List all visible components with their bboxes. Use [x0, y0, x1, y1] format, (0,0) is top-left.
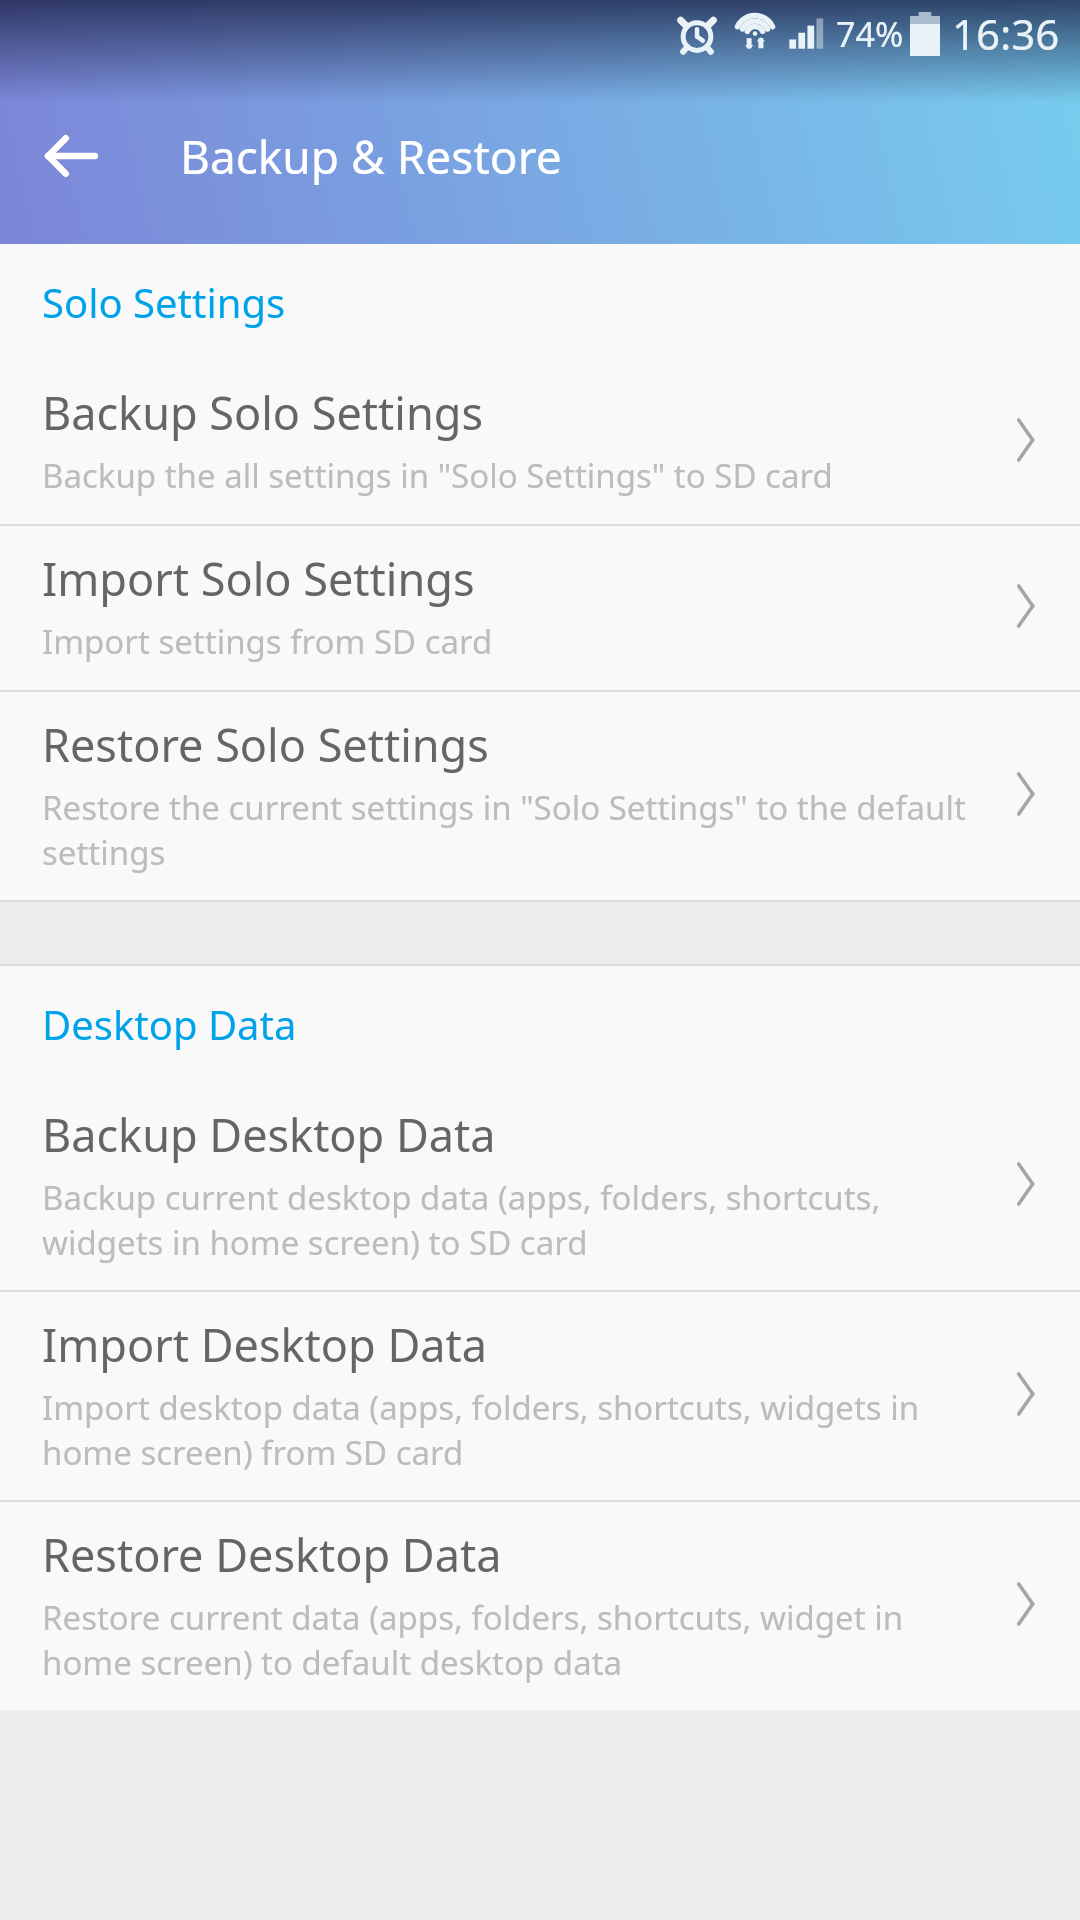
staticText: Backup Desktop Data	[42, 1104, 496, 1165]
staticText: Backup the all settings in "Solo Setting…	[42, 453, 833, 498]
staticText: 16:36	[952, 5, 1060, 62]
staticText: Restore the current settings in "Solo Se…	[42, 785, 968, 874]
button[interactable]: Import Desktop Data	[0, 1292, 1080, 1500]
staticText: Desktop Data	[42, 997, 297, 1051]
button[interactable]: Backup Desktop Data	[0, 1082, 1080, 1290]
button[interactable]: Back	[26, 111, 116, 201]
button[interactable]: Import Solo Settings	[0, 526, 1080, 690]
staticText: Backup Solo Settings	[42, 382, 484, 443]
button[interactable]: Restore Solo Settings	[0, 692, 1080, 900]
staticText: Solo Settings	[42, 275, 286, 329]
staticText: Backup current desktop data (apps, folde…	[42, 1175, 968, 1264]
staticText: Import settings from SD card	[42, 619, 493, 664]
button[interactable]: Backup Solo Settings	[0, 360, 1080, 524]
staticText: Restore Solo Settings	[42, 714, 489, 775]
staticText: Import Desktop Data	[42, 1314, 488, 1375]
staticText: Restore Desktop Data	[42, 1524, 502, 1585]
staticText: Backup & Restore	[180, 125, 562, 188]
button[interactable]: Restore Desktop Data	[0, 1502, 1080, 1710]
staticText: Import Solo Settings	[42, 548, 475, 609]
staticText: 74%	[836, 11, 904, 57]
staticText: Import desktop data (apps, folders, shor…	[42, 1385, 968, 1474]
staticText: Restore current data (apps, folders, sho…	[42, 1595, 968, 1684]
